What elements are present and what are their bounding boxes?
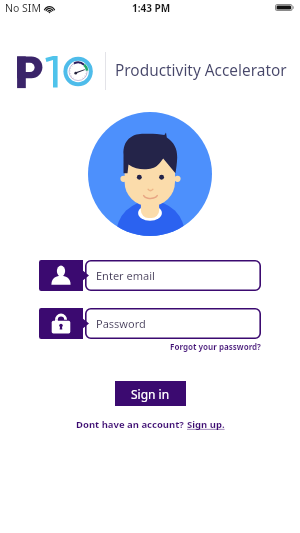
staticText: Sign in	[131, 386, 170, 402]
other: Email	[39, 260, 89, 291]
staticText: Productivity Accelerator	[115, 60, 287, 81]
staticText: Password	[96, 316, 146, 331]
staticText: Enter email	[96, 268, 155, 283]
staticText: No SIM	[5, 1, 41, 15]
button[interactable]: Enter email	[85, 260, 261, 291]
other: Password	[39, 308, 89, 339]
button[interactable]: Sign in	[115, 381, 186, 406]
staticText: Dont have an account?	[76, 418, 187, 431]
staticText: 1:43 PM	[132, 1, 171, 15]
button[interactable]: Password	[85, 308, 261, 339]
button[interactable]: Sign up.	[187, 418, 225, 431]
button[interactable]: Forgot your password?	[170, 341, 261, 352]
